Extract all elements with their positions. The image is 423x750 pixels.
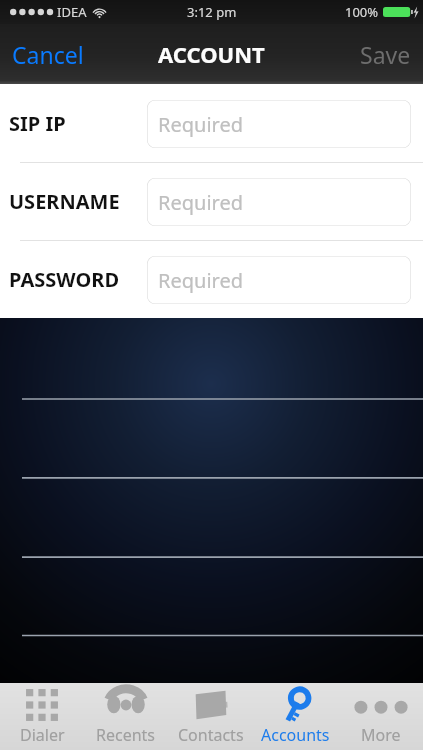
staticText: Required [158,111,243,138]
staticText: Recents [96,724,156,746]
staticText: ACCOUNT [158,39,265,69]
staticText: PASSWORD [9,266,120,293]
button[interactable]: Dialer [0,683,84,750]
staticText: Cancel [12,39,84,70]
other: Dialer [23,689,61,721]
button[interactable]: Cancel [0,31,96,78]
button[interactable]: Save [348,31,423,78]
staticText: Required [158,189,243,216]
button[interactable]: SIP IP [0,85,423,162]
other: More [362,696,400,714]
staticText: More [361,724,401,746]
staticText: 3:12 pm [187,3,237,21]
button[interactable]: USERNAME [0,163,423,240]
button[interactable]: More [338,683,423,750]
button[interactable]: Contacts [168,683,253,750]
staticText: Required [158,267,243,294]
other: Contacts [193,689,229,721]
staticText: Save [360,39,411,70]
staticText: 100% [345,3,379,21]
staticText: IDEA [57,3,87,21]
staticText: USERNAME [9,188,120,215]
other: Recents [106,690,146,720]
staticText: Dialer [20,724,65,746]
staticText: SIP IP [9,110,66,137]
staticText: Accounts [261,724,330,746]
staticText: Contacts [178,724,244,746]
other: Accounts [279,688,313,722]
button[interactable]: PASSWORD [0,241,423,318]
button[interactable]: Recents [84,683,168,750]
button[interactable]: Accounts [253,683,338,750]
